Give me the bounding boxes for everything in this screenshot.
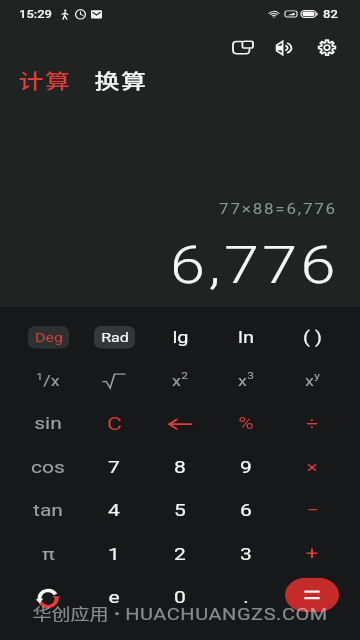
button[interactable]: 8 — [147, 445, 213, 489]
staticText: ( ) — [303, 327, 322, 346]
other: Equals — [285, 578, 339, 612]
staticText: 5 — [174, 500, 186, 521]
staticText: + — [305, 543, 319, 565]
button[interactable]: 7 — [81, 445, 147, 489]
staticText: /x — [43, 372, 60, 389]
staticText: 6,776 — [170, 235, 339, 296]
staticText: 9 — [240, 457, 252, 477]
staticText: 3 — [240, 544, 252, 564]
button[interactable]: 6 — [213, 489, 279, 532]
button[interactable]: π — [15, 532, 81, 576]
button[interactable]: e — [81, 576, 147, 619]
staticText: 换算 — [94, 66, 148, 95]
button[interactable]: Equals — [279, 576, 345, 619]
button[interactable]: Backspace — [147, 402, 213, 446]
staticText: 0 — [174, 587, 186, 608]
staticText: 1 — [36, 371, 43, 382]
staticText: e — [108, 587, 120, 608]
button[interactable]: ÷ — [279, 402, 345, 446]
button[interactable]: Sound — [264, 29, 306, 66]
staticText: % — [238, 413, 254, 434]
staticText: cos — [31, 457, 65, 477]
staticText: C — [107, 413, 122, 435]
staticText: 计算 — [18, 66, 72, 95]
button[interactable]: + — [279, 532, 345, 576]
button[interactable]: 5 — [147, 489, 213, 532]
button[interactable]: 计算 — [18, 61, 72, 99]
button[interactable]: History — [15, 576, 81, 619]
button[interactable]: Floating window — [222, 29, 264, 66]
button[interactable]: Deg — [15, 315, 81, 359]
staticText: × — [306, 457, 318, 477]
button[interactable]: 9 — [213, 445, 279, 489]
button[interactable]: lg — [147, 315, 213, 359]
other: History — [30, 583, 66, 613]
staticText: ln — [238, 327, 254, 346]
button[interactable]: × — [279, 445, 345, 489]
staticText: 15:29 — [19, 8, 52, 20]
button[interactable]: ln — [213, 315, 279, 359]
staticText: 2 — [174, 544, 186, 564]
staticText: x — [238, 372, 247, 389]
button[interactable]: tan — [15, 489, 81, 532]
button[interactable]: x — [147, 359, 213, 402]
staticText: 6 — [240, 500, 252, 521]
button[interactable]: Rad — [81, 315, 147, 359]
button[interactable]: cos — [15, 445, 81, 489]
staticText: ÷ — [306, 413, 318, 434]
button[interactable]: % — [213, 402, 279, 446]
button[interactable]: . — [213, 576, 279, 619]
staticText: tan — [33, 500, 63, 521]
staticText: 3 — [247, 370, 254, 382]
button[interactable]: 2 — [147, 532, 213, 576]
staticText: . — [243, 587, 249, 608]
button[interactable]: 1 — [15, 359, 81, 402]
button[interactable] — [81, 359, 147, 402]
button[interactable]: 0 — [147, 576, 213, 619]
staticText: HUACHUANGZS.COM — [125, 605, 328, 624]
staticText: sin — [34, 413, 62, 434]
button[interactable]: − — [279, 489, 345, 532]
staticText: − — [306, 500, 319, 521]
staticText: π — [42, 544, 55, 564]
staticText: Rad — [101, 330, 129, 345]
button[interactable]: 换算 — [94, 61, 148, 99]
button[interactable]: x — [213, 359, 279, 402]
button[interactable]: ( ) — [279, 315, 345, 359]
button[interactable]: C — [81, 402, 147, 446]
staticText: 7 — [108, 457, 120, 477]
staticText: 82 — [323, 8, 338, 20]
staticText: 4 — [108, 500, 120, 521]
button[interactable]: x — [279, 359, 345, 402]
staticText: x — [172, 372, 181, 389]
button[interactable]: Settings — [306, 29, 348, 66]
staticText: 2 — [181, 370, 188, 382]
button[interactable]: 1 — [81, 532, 147, 576]
staticText: 77×88=6,776 — [219, 201, 337, 217]
staticText: 8 — [174, 457, 186, 477]
staticText: 华创应用 — [32, 602, 109, 625]
staticText: y — [314, 370, 320, 382]
button[interactable]: sin — [15, 402, 81, 446]
staticText: x — [305, 372, 314, 389]
button[interactable]: 4 — [81, 489, 147, 532]
staticText: Deg — [35, 330, 63, 345]
staticText: lg — [172, 327, 189, 346]
other: Backspace — [162, 409, 198, 439]
staticText: 1 — [108, 544, 120, 564]
button[interactable]: 3 — [213, 532, 279, 576]
